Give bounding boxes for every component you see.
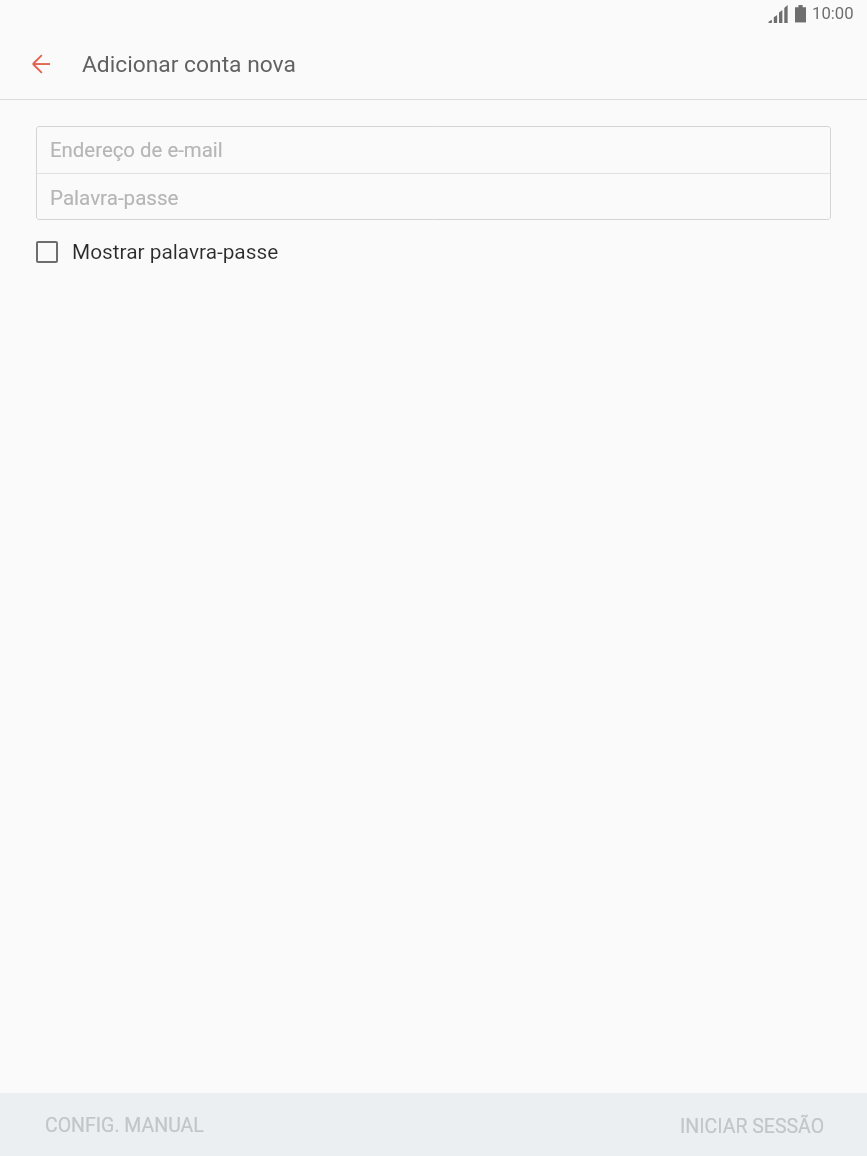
staticText: Palavra-passe — [50, 186, 179, 210]
button[interactable]: INICIAR SESSÃO — [664, 1101, 841, 1148]
button[interactable]: CONFIG. MANUAL — [29, 1101, 220, 1148]
staticText: Mostrar palavra-passe — [72, 240, 279, 264]
staticText: 10:00 — [812, 4, 854, 24]
button[interactable]: Back — [13, 36, 69, 92]
staticText: Endereço de e-mail — [50, 138, 223, 162]
staticText: Adicionar conta nova — [82, 51, 296, 78]
button[interactable]: Endereço de e-mail — [36, 126, 831, 173]
staticText: CONFIG. MANUAL — [45, 1114, 204, 1137]
staticText: INICIAR SESSÃO — [680, 1115, 825, 1138]
button[interactable]: Mostrar palavra-passe — [26, 232, 293, 272]
button[interactable]: Palavra-passe — [36, 174, 831, 220]
